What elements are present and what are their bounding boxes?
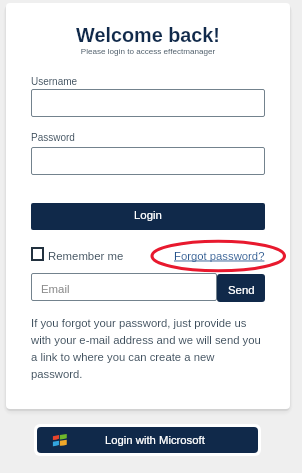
button[interactable]: Send [217,274,265,302]
button[interactable]: Forgot password? [174,250,265,263]
staticText: Password [31,132,75,143]
button[interactable]: Password input [31,147,265,175]
other: Microsoft logo [52,433,67,448]
button[interactable]: Login [31,203,265,230]
staticText: If you forgot your password, just provid… [31,317,275,381]
button[interactable]: Remember me [31,244,124,264]
button[interactable]: Login with Microsoft [37,427,258,453]
staticText: Email [41,283,70,296]
staticText: Username [31,76,78,87]
staticText: Login [134,209,162,222]
staticText: Remember me [48,250,124,263]
button[interactable]: Email input [31,273,217,301]
staticText: Login with Microsoft [105,434,205,447]
button[interactable]: Username input [31,89,265,117]
staticText: Welcome back! [6,24,290,46]
staticText: Send [228,284,255,297]
staticText: Please login to access effectmanager [6,47,290,56]
